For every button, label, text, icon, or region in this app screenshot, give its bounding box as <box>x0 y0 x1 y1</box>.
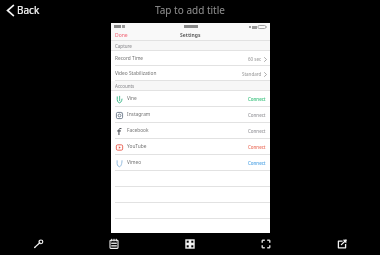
staticText: Connect <box>248 160 266 166</box>
button[interactable]: Notes <box>76 233 152 255</box>
button[interactable]: YouTube <box>111 139 270 154</box>
staticText: Instagram <box>127 111 151 118</box>
staticText: Done <box>115 32 128 39</box>
staticText: Back <box>17 3 40 17</box>
button[interactable]: Adjust <box>0 233 76 255</box>
staticText: YouTube <box>127 143 147 150</box>
button[interactable]: Back <box>0 0 50 20</box>
staticText: Connect <box>248 96 266 102</box>
staticText: Connect <box>248 112 266 118</box>
staticText: Capture <box>115 43 132 49</box>
staticText: Standard <box>242 71 262 77</box>
button[interactable]: Done <box>111 31 132 40</box>
button[interactable]: Crop <box>228 233 304 255</box>
staticText: Settings <box>180 32 201 39</box>
staticText: Vimeo <box>127 159 142 166</box>
staticText: Tap to add title <box>155 3 225 17</box>
staticText: Facebook <box>127 127 149 134</box>
staticText: Vine <box>127 95 137 102</box>
button[interactable]: Vimeo <box>111 155 270 170</box>
button[interactable]: Video Stabilization <box>111 66 270 81</box>
staticText: Accounts <box>115 83 135 89</box>
button[interactable]: Share <box>304 233 380 255</box>
staticText: 60 sec <box>248 56 262 62</box>
staticText: Connect <box>248 144 266 150</box>
button[interactable]: Vine <box>111 91 270 106</box>
button[interactable]: Instagram <box>111 107 270 122</box>
staticText: Video Stabilization <box>115 70 157 77</box>
button[interactable]: Tap to add title <box>141 0 239 20</box>
staticText: Record Time <box>115 55 144 62</box>
button[interactable]: Grid <box>152 233 228 255</box>
button[interactable]: Facebook <box>111 123 270 138</box>
staticText: Connect <box>248 128 266 134</box>
button[interactable]: Record Time <box>111 51 270 66</box>
